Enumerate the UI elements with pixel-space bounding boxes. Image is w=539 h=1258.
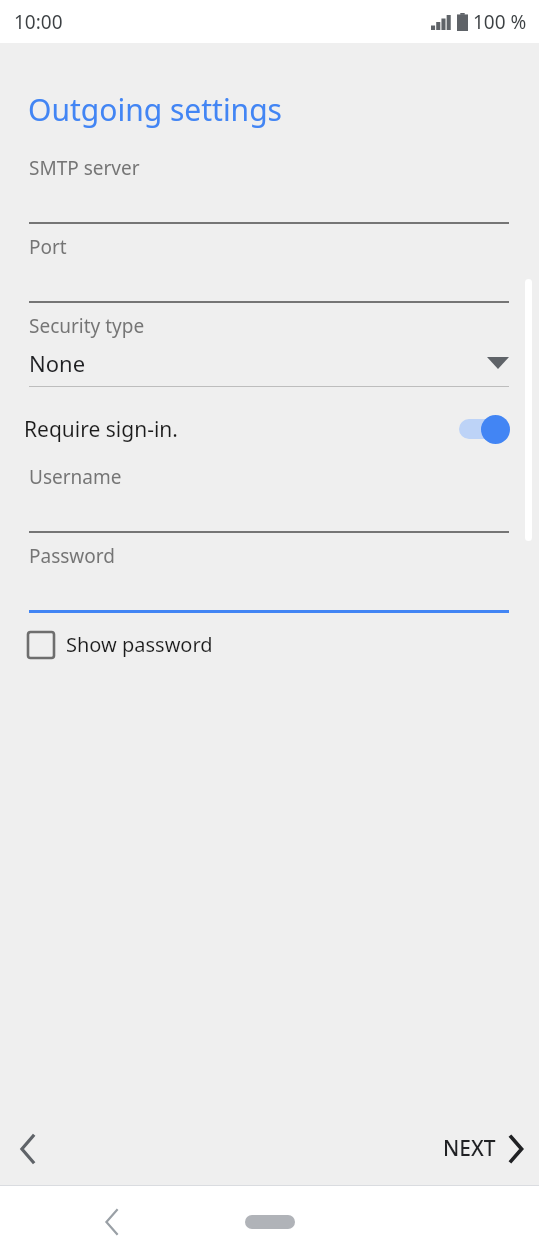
staticText: Username	[29, 464, 122, 490]
staticText: Port	[29, 234, 67, 260]
staticText: Require sign-in.	[24, 415, 457, 444]
staticText: NEXT	[443, 1134, 496, 1163]
button[interactable]: Back	[0, 1121, 56, 1177]
button[interactable]: Home	[231, 1201, 309, 1243]
staticText: Security type	[29, 313, 145, 339]
button[interactable]: Require sign-in.	[0, 404, 539, 454]
staticText: 100 %	[473, 9, 527, 35]
button[interactable]: NEXT	[425, 1122, 539, 1175]
staticText: Outgoing settings	[28, 89, 282, 130]
button[interactable]: Port	[0, 234, 539, 303]
staticText: None	[29, 348, 487, 378]
button[interactable]: Username	[0, 464, 539, 533]
button[interactable]: Security type	[0, 313, 539, 387]
staticText: SMTP server	[29, 155, 140, 181]
button[interactable]: Show password	[0, 627, 229, 662]
staticText: Show password	[66, 631, 213, 658]
button[interactable]: Require sign-in toggle	[457, 414, 513, 444]
button[interactable]: Back	[88, 1198, 136, 1246]
button[interactable]: SMTP server	[0, 155, 539, 224]
staticText: 10:00	[14, 9, 63, 35]
staticText: Password	[29, 543, 115, 569]
button[interactable]: Password	[0, 543, 539, 613]
